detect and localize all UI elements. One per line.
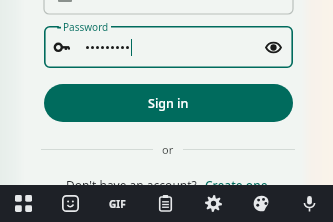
staticText: Don't have an account? — [66, 177, 197, 193]
button[interactable]: Themes — [237, 185, 285, 222]
staticText: Password — [63, 20, 109, 34]
button[interactable]: Create one — [205, 177, 268, 193]
staticText: Sign in — [148, 95, 189, 112]
button[interactable]: Voice input — [285, 185, 333, 222]
staticText: GIF — [109, 197, 126, 211]
button[interactable]: Stickers — [47, 185, 94, 222]
button[interactable]: GIF — [94, 185, 141, 222]
button[interactable]: Password — [44, 26, 293, 68]
button[interactable]: Show password — [260, 34, 286, 60]
button[interactable]: Settings — [189, 185, 237, 222]
button[interactable]: Clipboard — [141, 185, 189, 222]
button[interactable]: Sign in — [44, 84, 293, 122]
button[interactable]: Apps — [0, 185, 47, 222]
staticText: Create one — [205, 177, 268, 193]
button[interactable] — [44, 0, 293, 14]
staticText: or — [162, 142, 174, 157]
